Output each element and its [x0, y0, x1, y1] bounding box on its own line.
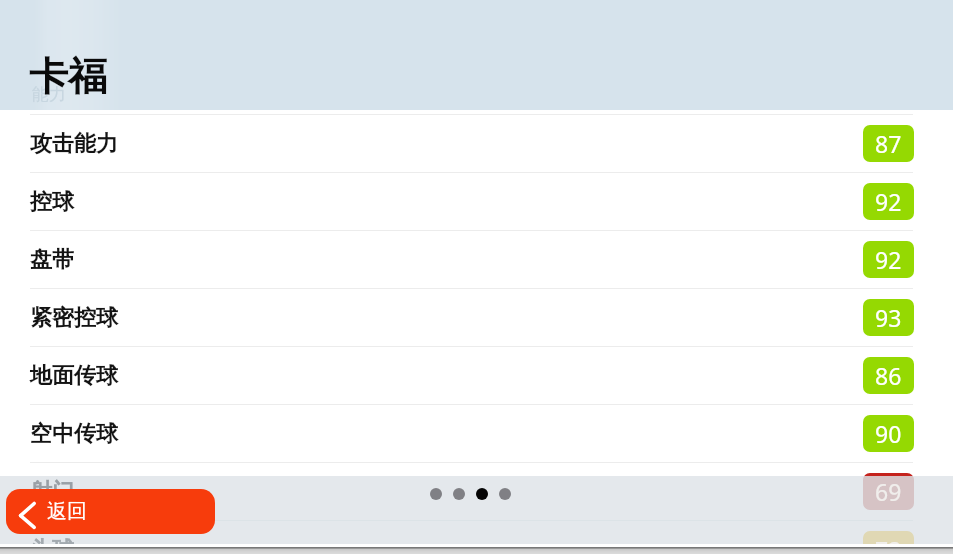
- staticText: 90: [875, 418, 902, 449]
- staticText: 头球: [30, 536, 74, 544]
- staticText: 控球: [30, 188, 74, 216]
- staticText: 69: [875, 476, 902, 507]
- button[interactable]: Back: [6, 489, 215, 534]
- staticText: 空中传球: [30, 420, 118, 448]
- button[interactable]: 射门: [0, 462, 953, 520]
- button[interactable]: 盘带: [0, 230, 953, 288]
- staticText: 地面传球: [30, 362, 118, 390]
- staticText: 92: [875, 186, 902, 217]
- staticText: 86: [875, 360, 902, 391]
- button[interactable]: Go to page 4: [499, 488, 511, 500]
- button[interactable]: Go to page 3: [476, 488, 488, 500]
- button[interactable]: 攻击能力: [0, 114, 953, 172]
- staticText: 射门: [30, 478, 74, 506]
- staticText: 盘带: [30, 246, 74, 274]
- staticText: 返回: [47, 499, 87, 524]
- staticText: 93: [875, 302, 902, 333]
- staticText: 72: [875, 534, 902, 544]
- staticText: 72: [875, 522, 902, 553]
- staticText: 卡福: [29, 52, 107, 101]
- staticText: 头球: [30, 524, 74, 552]
- button[interactable]: 空中传球: [0, 404, 953, 462]
- button[interactable]: 头球: [0, 520, 953, 554]
- button[interactable]: 地面传球: [0, 346, 953, 404]
- staticText: 紧密控球: [30, 304, 118, 332]
- staticText: 92: [875, 244, 902, 275]
- button[interactable]: 控球: [0, 172, 953, 230]
- other: Back: [18, 500, 44, 534]
- button[interactable]: 紧密控球: [0, 288, 953, 346]
- staticText: 能力: [32, 84, 66, 105]
- staticText: 攻击能力: [30, 130, 118, 158]
- button[interactable]: Go to page 1: [430, 488, 442, 500]
- staticText: 87: [875, 128, 902, 159]
- staticText: 69: [875, 476, 902, 507]
- staticText: 射门: [30, 478, 74, 506]
- button[interactable]: Go to page 2: [453, 488, 465, 500]
